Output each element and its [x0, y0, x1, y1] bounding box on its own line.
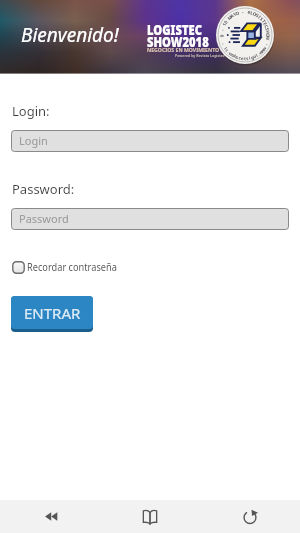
staticText: Password — [19, 211, 69, 226]
button[interactable]: Login — [11, 130, 289, 152]
button[interactable]: Back — [0, 500, 100, 533]
staticText: Bienvenido! — [21, 22, 119, 48]
button[interactable]: Bookmarks — [100, 500, 200, 533]
button[interactable]: Reload — [200, 500, 300, 533]
staticText: Powered by Revista Logistec — [175, 53, 225, 58]
staticText: SHOW2018 — [147, 32, 209, 51]
staticText: NEGOCIOS EN MOVIMIENTO — [147, 46, 219, 54]
staticText: LOGISTEC — [147, 20, 202, 39]
staticText: ENTRAR — [24, 303, 81, 323]
staticText: Recordar contraseña — [27, 260, 117, 274]
button[interactable]: Password — [11, 208, 289, 230]
staticText: Password: — [12, 180, 75, 198]
staticText: Login — [19, 133, 48, 148]
staticText: Login: — [12, 102, 50, 120]
button[interactable]: ENTRAR — [11, 296, 93, 329]
button[interactable]: Recordar contraseña — [12, 260, 131, 274]
